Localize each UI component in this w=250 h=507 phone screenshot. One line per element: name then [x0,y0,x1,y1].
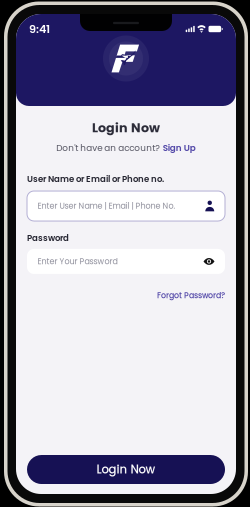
staticText: Sign Up [163,142,196,154]
staticText: Enter Your Password [37,256,117,267]
button[interactable]: Forgot Password? [27,290,225,301]
staticText: 9:41 [29,21,50,37]
staticText: Enter User Name | Email | Phone No. [37,200,175,212]
staticText: Password [27,232,69,244]
staticText: Login Now [92,119,160,137]
staticText: Forgot Password? [157,290,225,301]
staticText: User Name or Email or Phone no. [27,173,164,185]
staticText: Login Now [96,461,155,478]
button[interactable]: Login Now [27,455,225,484]
staticText: Don't have an account? [56,142,160,154]
button[interactable]: Sign Up [163,142,196,154]
